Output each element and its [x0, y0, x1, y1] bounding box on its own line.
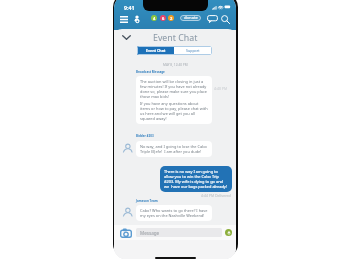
- button[interactable]: Alerts 4: [151, 15, 157, 21]
- staticText: The auction will be closing in just a fe…: [140, 79, 208, 99]
- button[interactable]: Search: [218, 11, 233, 27]
- staticText: MAY 8, 12:40 PM: [163, 63, 188, 67]
- staticText: No way, and I going to lose the Cabo Tri…: [140, 144, 208, 154]
- staticText: Support: [186, 48, 200, 53]
- staticText: Broadcast Message: [136, 70, 165, 74]
- staticText: 9:41: [124, 4, 135, 11]
- button[interactable]: Event Chat: [137, 46, 174, 55]
- button[interactable]: Alerts 2: [168, 15, 174, 21]
- button[interactable]: Collapse: [118, 30, 135, 45]
- button[interactable]: Camera: [119, 227, 133, 239]
- staticText: 6: [162, 16, 165, 21]
- staticText: Jameson Team: [136, 199, 158, 203]
- staticText: There is no way I am going to allow you …: [164, 169, 228, 189]
- button[interactable]: Alerts 6: [160, 15, 166, 21]
- staticText: donate: [184, 15, 198, 21]
- button[interactable]: Menu: [116, 11, 132, 27]
- staticText: Bidder #203: [136, 134, 154, 138]
- button[interactable]: Messages: [205, 11, 220, 27]
- button[interactable]: donate: [180, 15, 201, 21]
- staticText: 2: [170, 16, 173, 21]
- button[interactable]: Send: [225, 229, 232, 236]
- staticText: 4:44 PM Delivered: [201, 193, 231, 198]
- staticText: Event Chat: [146, 48, 166, 53]
- button[interactable]: Support: [174, 46, 212, 55]
- button[interactable]: Profile: [130, 11, 143, 27]
- staticText: 4: [153, 16, 156, 21]
- staticText: If you have any questions about items or…: [140, 101, 208, 121]
- staticText: Message: [140, 230, 160, 236]
- staticText: 4:40 PM: [214, 86, 228, 91]
- staticText: Event Chat: [153, 32, 198, 44]
- button[interactable]: Message: [136, 228, 222, 237]
- staticText: Cabo? Who wants to go there? I have my e…: [140, 208, 208, 218]
